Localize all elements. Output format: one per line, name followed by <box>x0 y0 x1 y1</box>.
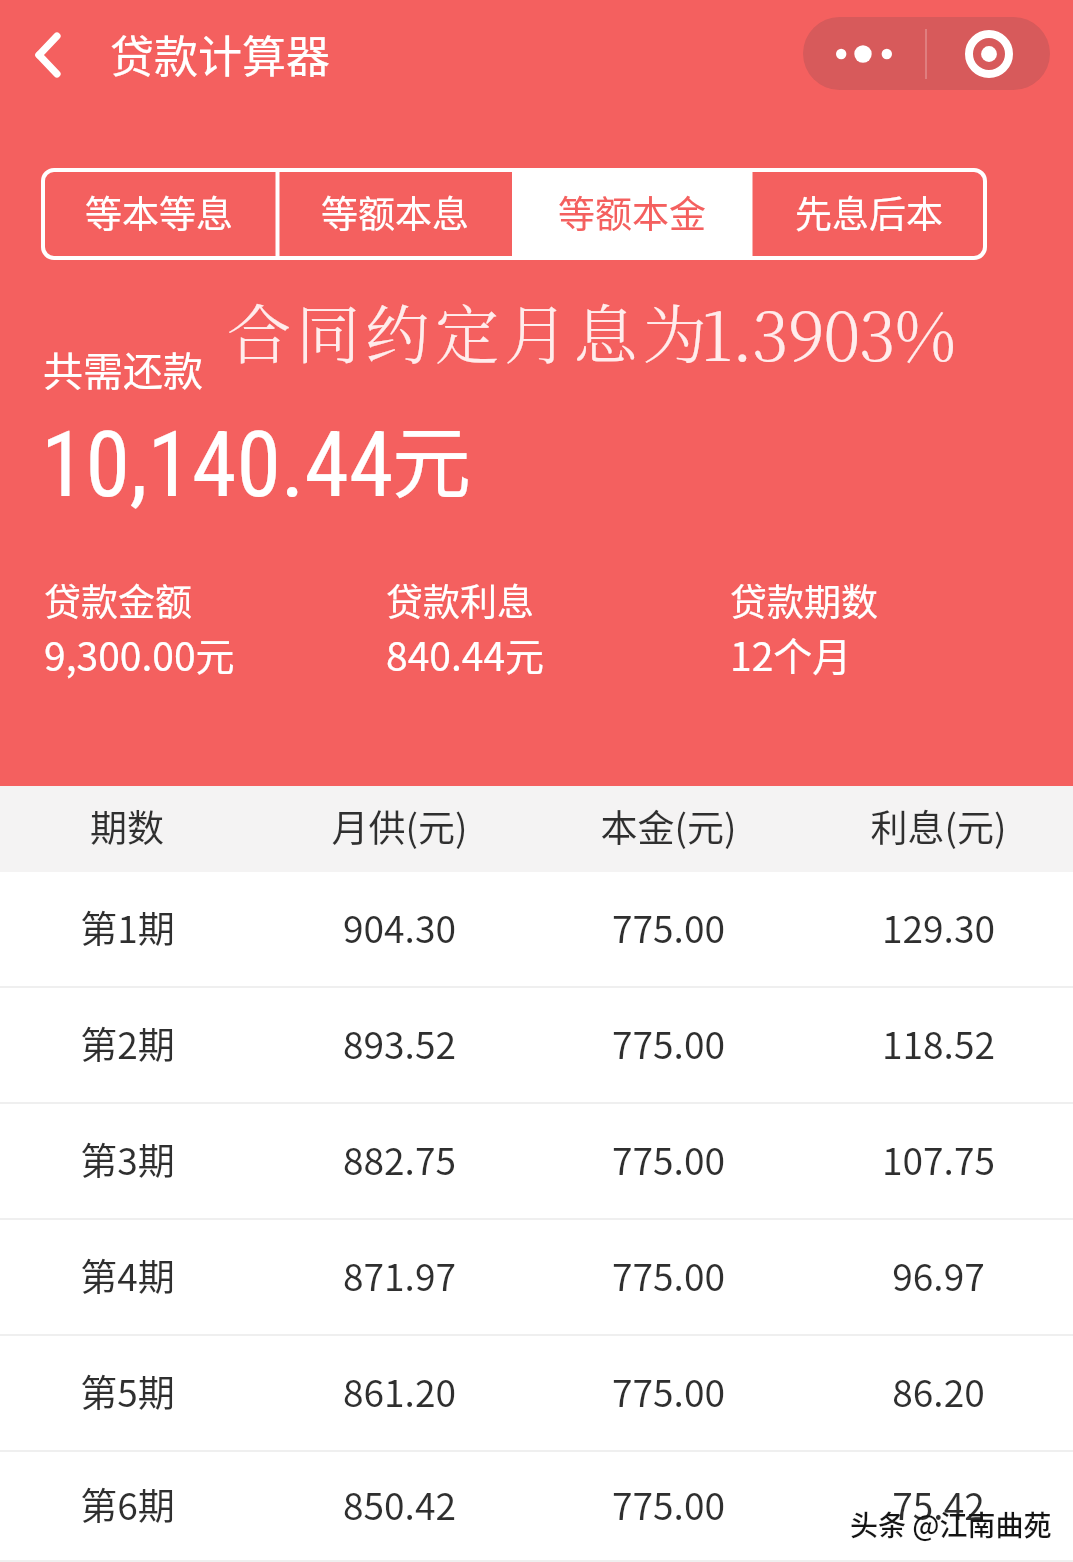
staticText: 861.20 <box>343 1364 456 1418</box>
staticText: 882.75 <box>343 1132 456 1186</box>
staticText: 元 <box>392 400 471 514</box>
staticText: 合同约定月息为 <box>227 284 713 376</box>
staticText: 第4期 <box>80 1248 175 1302</box>
staticText: 等额本息 <box>321 185 469 239</box>
button[interactable]: 先息后本 <box>750 168 987 260</box>
button[interactable]: 第1期 <box>0 872 1073 988</box>
staticText: 10,140.44 <box>41 413 394 518</box>
staticText: 75.42 <box>892 1477 985 1531</box>
staticText: 775.00 <box>612 900 725 954</box>
button[interactable]: 第3期 <box>0 1104 1073 1220</box>
staticText: 利息(元) <box>870 799 1007 853</box>
staticText: 第5期 <box>80 1364 175 1418</box>
staticText: 头条 @江南曲苑 <box>850 1504 1052 1545</box>
staticText: 775.00 <box>612 1016 725 1070</box>
staticText: 904.30 <box>343 900 456 954</box>
button[interactable]: Close mini program <box>927 17 1050 90</box>
staticText: 12个月 <box>730 626 852 682</box>
staticText: 贷款计算器 <box>110 22 330 86</box>
staticText: 775.00 <box>612 1248 725 1302</box>
staticText: 第3期 <box>80 1132 175 1186</box>
staticText: 本金(元) <box>600 799 737 853</box>
staticText: 107.75 <box>882 1132 995 1186</box>
staticText: 贷款利息 <box>386 573 534 627</box>
button[interactable]: 第5期 <box>0 1336 1073 1452</box>
staticText: 等本等息 <box>85 185 233 239</box>
staticText: 期数 <box>90 799 164 853</box>
staticText: 775.00 <box>612 1477 725 1531</box>
staticText: 等额本金 <box>558 185 706 239</box>
staticText: 840.44元 <box>386 626 545 682</box>
staticText: 贷款期数 <box>730 573 878 627</box>
staticText: 775.00 <box>612 1364 725 1418</box>
staticText: 129.30 <box>882 900 995 954</box>
staticText: 先息后本 <box>795 185 943 239</box>
staticText: 850.42 <box>343 1477 456 1531</box>
staticText: 贷款金额 <box>44 573 192 627</box>
staticText: 118.52 <box>882 1016 995 1070</box>
button[interactable]: More options <box>803 17 925 90</box>
button[interactable]: 第4期 <box>0 1220 1073 1336</box>
button[interactable]: 第6期 <box>0 1452 1073 1562</box>
staticText: 9,300.00元 <box>44 626 235 682</box>
staticText: 第2期 <box>80 1016 175 1070</box>
staticText: 86.20 <box>892 1364 985 1418</box>
staticText: 共需还款 <box>43 340 203 398</box>
staticText: 1.3903% <box>701 284 955 380</box>
button[interactable]: 等额本息 <box>277 168 513 260</box>
staticText: 96.97 <box>892 1248 985 1302</box>
button[interactable]: 等额本金 <box>513 168 750 260</box>
button[interactable]: Back <box>12 12 84 98</box>
staticText: 775.00 <box>612 1132 725 1186</box>
button[interactable]: 等本等息 <box>41 168 277 260</box>
staticText: 月供(元) <box>331 799 468 853</box>
staticText: 871.97 <box>343 1248 456 1302</box>
button[interactable]: 第2期 <box>0 988 1073 1104</box>
staticText: 893.52 <box>343 1016 456 1070</box>
staticText: 第6期 <box>80 1477 175 1531</box>
staticText: 第1期 <box>80 900 175 954</box>
